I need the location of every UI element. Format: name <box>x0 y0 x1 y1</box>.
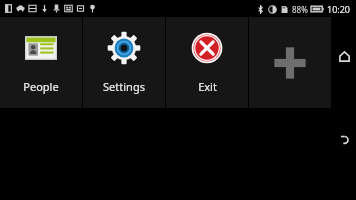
button[interactable]: Settings <box>83 17 165 108</box>
staticText: 10:20 <box>327 3 351 15</box>
button[interactable]: Back <box>333 129 355 151</box>
button[interactable]: Home <box>333 45 355 67</box>
button[interactable]: Exit <box>166 17 248 108</box>
staticText: People <box>23 79 59 94</box>
button[interactable]: Add <box>249 17 331 108</box>
button[interactable]: People <box>0 17 82 108</box>
staticText: Settings <box>103 79 145 94</box>
staticText: 88% <box>292 4 308 15</box>
staticText: Exit <box>198 79 217 94</box>
